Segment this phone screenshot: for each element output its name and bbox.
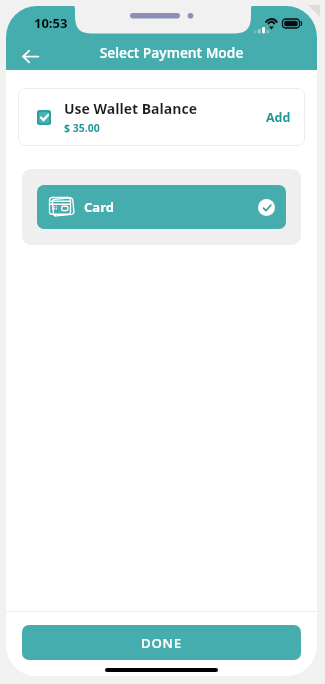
staticText: Card: [84, 198, 115, 216]
staticText: Use Wallet Balance: [64, 99, 197, 118]
button[interactable]: Back: [15, 44, 45, 68]
staticText: 10:53: [34, 14, 68, 32]
staticText: Add: [266, 109, 291, 126]
button[interactable]: Card: [37, 185, 286, 229]
staticText: $ 35.00: [64, 121, 100, 135]
staticText: DONE: [141, 634, 182, 652]
staticText: Select Payment Mode: [16, 43, 317, 62]
button[interactable]: Add: [262, 103, 295, 132]
button[interactable]: Use Wallet Balance: [18, 88, 305, 146]
button[interactable]: DONE: [22, 625, 301, 660]
